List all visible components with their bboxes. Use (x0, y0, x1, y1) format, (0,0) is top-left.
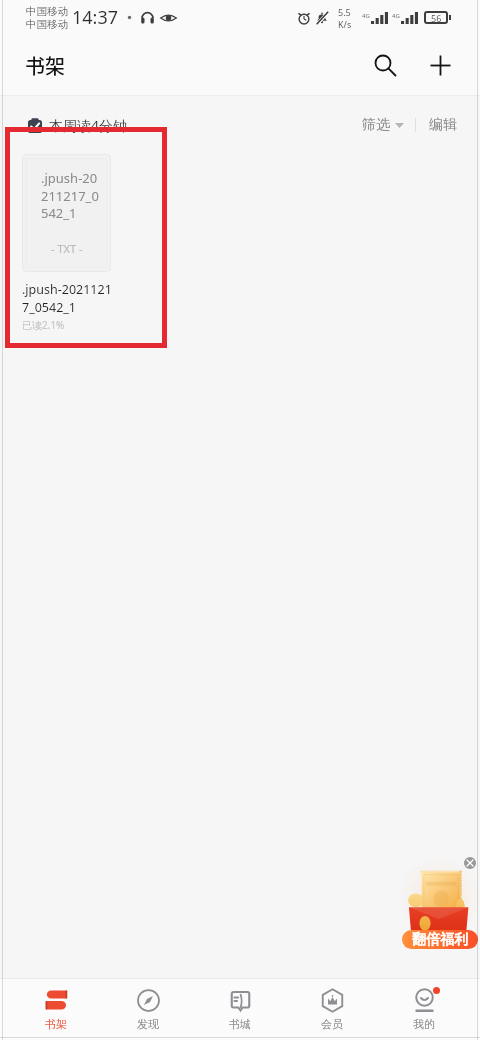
button[interactable]: 本周读4分钟 (27, 116, 128, 135)
staticText: 4G (362, 12, 370, 20)
staticText: 14:37 (72, 5, 119, 30)
button[interactable]: 筛选 (362, 116, 404, 134)
staticText: 4G (392, 12, 400, 20)
button[interactable]: 编辑 (429, 116, 457, 134)
staticText: 已读2.1% (22, 318, 65, 332)
staticText: 本周读4分钟 (49, 116, 128, 135)
staticText: 筛选 (362, 116, 390, 134)
staticText: 翻倍福利 (412, 931, 468, 949)
staticText: .jpush-20211217_0542_1 (41, 169, 103, 222)
staticText: K/s (338, 18, 352, 30)
staticText: - TXT - (51, 241, 83, 256)
button[interactable]: .jpush-20211217_0542_1 (22, 154, 111, 272)
button[interactable]: 会员 (286, 979, 378, 1040)
button[interactable]: 发现 (102, 979, 194, 1040)
staticText: 书架 (25, 51, 65, 80)
staticText: 中国移动 (26, 5, 68, 18)
staticText: 我的 (413, 1017, 435, 1031)
button[interactable]: Double reward (404, 870, 474, 932)
staticText: 中国移动 (26, 18, 68, 31)
staticText: 书架 (45, 1017, 67, 1031)
staticText: 发现 (137, 1017, 159, 1031)
button[interactable]: 我的 (378, 979, 470, 1040)
staticText: 书城 (229, 1017, 251, 1031)
staticText: 56 (431, 12, 442, 24)
staticText: 编辑 (429, 116, 457, 134)
button[interactable]: Double reward (402, 930, 478, 949)
staticText: .jpush-20211217_0542_1 (22, 281, 112, 315)
button[interactable]: 书架 (10, 979, 102, 1040)
staticText: 会员 (321, 1017, 343, 1031)
button[interactable]: Add book (416, 41, 464, 89)
staticText: 5.5 (338, 6, 351, 18)
button[interactable]: Close advertisement (464, 857, 476, 869)
button[interactable]: 书城 (194, 979, 286, 1040)
button[interactable]: Search (361, 41, 409, 89)
